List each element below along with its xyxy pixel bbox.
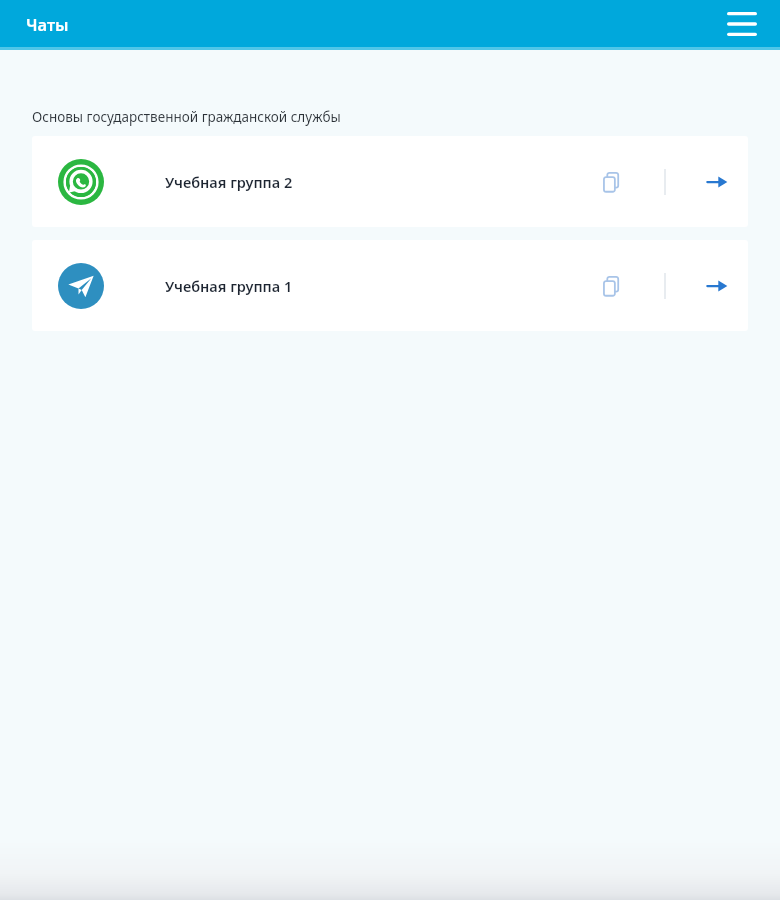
button[interactable]: Open chat	[695, 264, 739, 308]
staticText: Основы государственной гражданской служб…	[32, 108, 341, 126]
staticText: Учебная группа 2	[165, 172, 589, 192]
button[interactable]: Copy link	[589, 160, 633, 204]
staticText: Учебная группа 1	[165, 276, 589, 296]
button[interactable]: Open chat	[695, 160, 739, 204]
button[interactable]: Учебная группа 1	[32, 240, 748, 331]
button[interactable]: Учебная группа 2	[32, 136, 748, 227]
staticText: Чаты	[26, 13, 69, 35]
button[interactable]: Menu	[722, 4, 762, 44]
button[interactable]: Copy link	[589, 264, 633, 308]
